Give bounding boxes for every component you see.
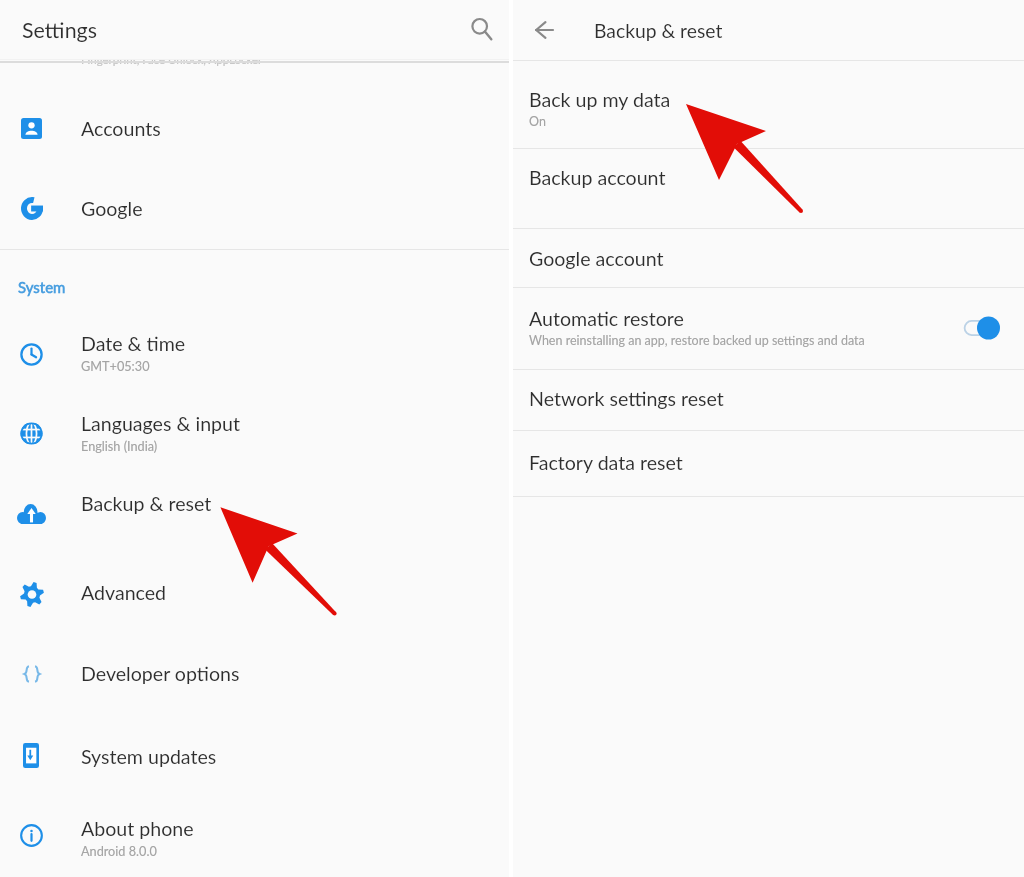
button[interactable]: Advanced (0, 555, 509, 635)
staticText: Developer options (81, 662, 240, 686)
staticText: When reinstalling an app, restore backed… (529, 333, 865, 348)
staticText: Date & time (81, 332, 186, 356)
staticText: Network settings reset (529, 387, 724, 411)
staticText: GMT+05:30 (81, 358, 150, 373)
button[interactable]: Google (0, 171, 509, 251)
button[interactable]: Google account (513, 228, 1024, 288)
button[interactable]: Languages & input (0, 386, 509, 466)
staticText: Backup & reset (81, 492, 212, 516)
staticText: Factory data reset (529, 451, 683, 475)
button[interactable]: Backup & reset (0, 466, 509, 546)
staticText: Languages & input (81, 412, 240, 436)
button[interactable]: About phone (0, 791, 509, 871)
staticText: System updates (81, 745, 217, 769)
button[interactable]: Network settings reset (513, 369, 1024, 430)
staticText: On (529, 114, 546, 129)
button[interactable]: System updates (0, 719, 509, 799)
staticText: System (18, 278, 66, 296)
button[interactable]: Backup account (513, 148, 1024, 228)
button[interactable]: Factory data reset (513, 430, 1024, 497)
button[interactable]: Developer options (0, 636, 509, 716)
staticText: Backup account (529, 166, 666, 190)
staticText: Google (81, 197, 143, 221)
button[interactable]: Search (459, 13, 501, 55)
staticText: Back up my data (529, 88, 671, 112)
staticText: Settings (22, 17, 97, 43)
staticText: Fingerprint, Face Unlock, AppLocker (81, 53, 263, 67)
button[interactable]: Automatic restore toggle (951, 306, 1007, 350)
button[interactable]: Accounts (0, 91, 509, 171)
staticText: Automatic restore (529, 307, 684, 331)
staticText: Accounts (81, 117, 161, 141)
staticText: Android 8.0.0 (81, 843, 157, 858)
button[interactable]: Automatic restore (513, 287, 1024, 369)
staticText: Backup & reset (594, 19, 723, 42)
staticText: English (India) (81, 438, 158, 453)
staticText: About phone (81, 817, 194, 841)
button[interactable]: Back up my data (513, 60, 1024, 148)
button[interactable]: Back (523, 9, 565, 51)
staticText: Advanced (81, 581, 167, 605)
button[interactable]: Date & time (0, 306, 509, 386)
staticText: Google account (529, 247, 664, 271)
